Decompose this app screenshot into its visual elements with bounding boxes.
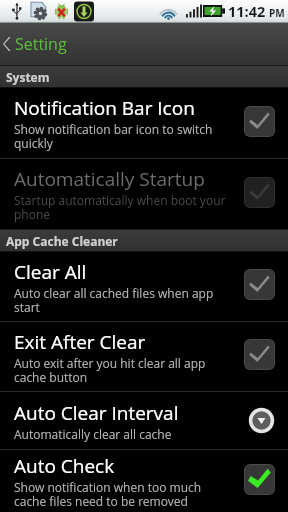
button[interactable]: Automatically Startup bbox=[0, 159, 288, 229]
button[interactable]: Disabled, toggle on bbox=[244, 339, 275, 370]
staticText: 11:42 bbox=[228, 2, 266, 22]
staticText: Auto clear all cached files when app sta… bbox=[14, 285, 236, 315]
button[interactable]: Enabled, toggle off bbox=[244, 464, 275, 495]
button[interactable]: Disabled, toggle on bbox=[244, 106, 275, 137]
button[interactable]: Auto Clear Interval bbox=[0, 392, 288, 449]
button[interactable]: Back to Setting bbox=[0, 23, 288, 65]
button[interactable]: Notification Bar Icon bbox=[0, 88, 288, 158]
staticText: Automatically Startup bbox=[14, 166, 205, 192]
button[interactable]: Clear All bbox=[0, 252, 288, 321]
staticText: Setting bbox=[15, 33, 67, 55]
staticText: App Cache Cleaner bbox=[6, 233, 118, 249]
staticText: Notification Bar Icon bbox=[14, 95, 195, 121]
staticText: Auto Clear Interval bbox=[14, 400, 179, 426]
staticText: Exit After Clear bbox=[14, 329, 146, 355]
staticText: Auto Check bbox=[14, 453, 115, 479]
staticText: Auto exit after you hit clear all app ca… bbox=[14, 355, 236, 385]
button[interactable]: Disabled, toggle on bbox=[244, 177, 275, 208]
staticText: Clear All bbox=[14, 259, 87, 285]
button[interactable]: Choose auto clear interval bbox=[248, 407, 275, 434]
staticText: Show notification when too much cache fi… bbox=[14, 479, 236, 509]
staticText: PM bbox=[269, 6, 285, 20]
staticText: Automatically clear all cache bbox=[14, 426, 172, 442]
button[interactable]: Auto Check bbox=[0, 450, 288, 512]
staticText: Startup automatically when boot your pho… bbox=[14, 192, 236, 222]
button[interactable]: Exit After Clear bbox=[0, 322, 288, 391]
staticText: Show notification bar icon to switch qui… bbox=[14, 121, 236, 151]
staticText: System bbox=[6, 69, 50, 85]
button[interactable]: Disabled, toggle on bbox=[244, 269, 275, 300]
